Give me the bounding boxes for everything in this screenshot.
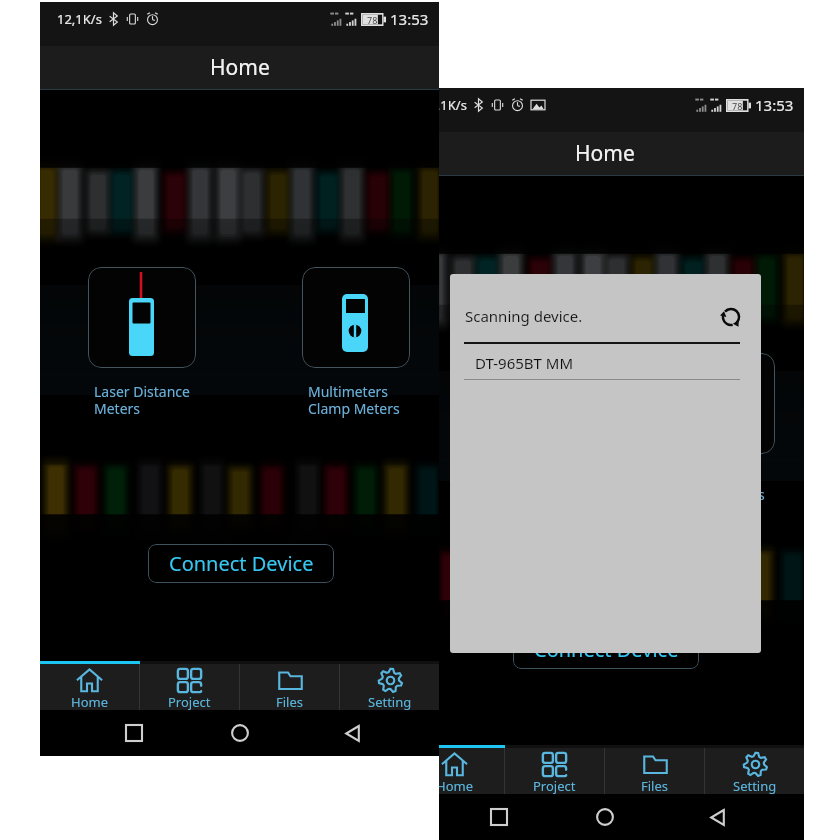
button[interactable]: Home xyxy=(585,797,625,837)
button[interactable]: Project xyxy=(140,664,239,710)
staticText: Home xyxy=(439,777,473,795)
staticText: 12,1K/s xyxy=(57,10,102,28)
staticText: Files xyxy=(641,777,669,795)
button[interactable] xyxy=(88,267,196,368)
staticText: 12,1K/s xyxy=(439,96,467,114)
staticText: Project xyxy=(533,777,576,795)
staticText: Project xyxy=(168,693,211,711)
button[interactable]: Back xyxy=(697,797,737,837)
button[interactable]: Project xyxy=(505,748,604,794)
button[interactable]: Connect Device xyxy=(513,630,699,669)
button[interactable]: Refresh scan xyxy=(718,304,744,330)
button[interactable]: Files xyxy=(240,664,339,710)
staticText: 78 xyxy=(367,14,378,26)
button[interactable]: Setting xyxy=(705,748,804,794)
staticText: Multimeters Clamp Meters xyxy=(673,468,765,504)
button[interactable]: Home xyxy=(40,664,139,710)
staticText: Scanning device. xyxy=(465,306,583,326)
staticText: Home xyxy=(575,139,635,168)
button[interactable] xyxy=(302,267,410,368)
button[interactable] xyxy=(453,353,561,454)
staticText: DT-965BT MM xyxy=(475,353,574,373)
staticText: Setting xyxy=(733,777,777,795)
staticText: 13:53 xyxy=(390,9,429,29)
button[interactable] xyxy=(667,353,775,454)
staticText: Connect Device xyxy=(169,550,314,577)
button[interactable]: Home xyxy=(439,748,504,794)
button[interactable]: Files xyxy=(605,748,704,794)
staticText: 78 xyxy=(732,100,743,112)
button[interactable]: Recents xyxy=(479,797,519,837)
staticText: Connect Device xyxy=(534,636,679,663)
staticText: Laser Distance Meters xyxy=(94,382,190,418)
staticText: 13:53 xyxy=(755,95,794,115)
staticText: Setting xyxy=(368,693,412,711)
staticText: Multimeters Clamp Meters xyxy=(308,382,400,418)
button[interactable]: Back xyxy=(332,713,372,753)
button[interactable]: Setting xyxy=(340,664,439,710)
button[interactable]: Recents xyxy=(114,713,154,753)
staticText: Home xyxy=(210,53,270,82)
staticText: Home xyxy=(71,693,108,711)
staticText: Files xyxy=(276,693,304,711)
button[interactable]: Connect Device xyxy=(148,544,334,583)
button[interactable]: Home xyxy=(220,713,260,753)
